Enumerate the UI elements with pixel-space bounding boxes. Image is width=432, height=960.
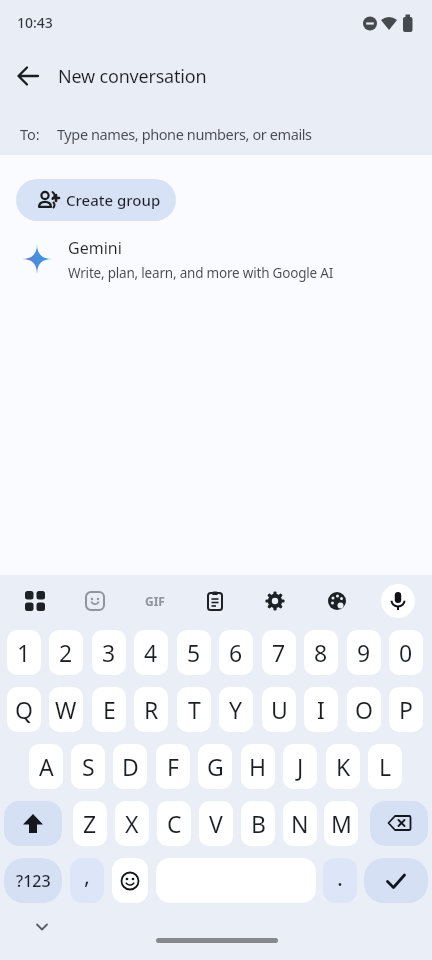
button[interactable]: GIF [137,583,173,619]
button[interactable] [257,583,293,619]
button[interactable] [17,583,53,619]
staticText: 9 [357,637,371,668]
button[interactable]: K [326,744,360,789]
button[interactable]: F [156,744,190,789]
staticText: 6 [229,637,243,668]
staticText: ?123 [16,870,51,892]
staticText: T [188,694,201,725]
button[interactable]: G [198,744,232,789]
button[interactable]: M [324,801,358,846]
button[interactable]: Q [7,687,41,732]
button[interactable]: 6 [219,630,253,675]
button[interactable]: 0 [389,630,423,675]
button[interactable] [4,801,62,846]
staticText: E [103,694,116,725]
staticText: GIF [145,593,165,609]
button[interactable]: , [70,858,104,903]
button[interactable]: . [323,858,357,903]
button[interactable]: 1 [7,630,41,675]
staticText: D [122,751,139,782]
staticText: M [331,808,352,839]
staticText: 0 [399,637,413,668]
button[interactable] [156,858,316,903]
button[interactable]: Z [73,801,107,846]
staticText: To: [20,124,40,144]
staticText: W [55,694,77,725]
button[interactable]: V [199,801,233,846]
staticText: Z [83,808,97,839]
button[interactable] [10,59,46,95]
staticText: G [207,751,224,782]
button[interactable] [319,583,355,619]
staticText: 8 [314,637,328,668]
staticText: Gemini [68,237,122,259]
staticText: R [144,694,159,725]
button[interactable]: E [92,687,126,732]
button[interactable]: 9 [347,630,381,675]
staticText: H [249,751,267,782]
button[interactable]: T [177,687,211,732]
staticText: N [291,808,309,839]
button[interactable] [77,583,113,619]
staticText: Create group [66,190,161,210]
button[interactable]: I [304,687,338,732]
button[interactable]: Gemini [0,228,432,292]
button[interactable]: ?123 [4,858,62,903]
staticText: 3 [102,637,116,668]
staticText: Type names, phone numbers, or emails [57,124,312,144]
staticText: I [317,694,325,725]
staticText: O [355,694,373,725]
button[interactable] [26,912,58,944]
staticText: 4 [144,637,158,668]
staticText: J [297,751,304,782]
staticText: Y [229,694,243,725]
button[interactable]: 8 [304,630,338,675]
button[interactable]: W [49,687,83,732]
button[interactable] [364,858,428,903]
button[interactable]: Y [219,687,253,732]
button[interactable]: 7 [262,630,296,675]
button[interactable]: C [157,801,191,846]
staticText: 1 [17,637,31,668]
staticText: U [271,694,288,725]
button[interactable] [381,584,415,618]
button[interactable]: 2 [49,630,83,675]
staticText: L [379,751,392,782]
staticText: X [125,808,139,839]
button[interactable]: 5 [177,630,211,675]
button[interactable]: N [283,801,317,846]
staticText: P [399,694,413,725]
button[interactable] [112,858,148,903]
staticText: S [82,751,95,782]
button[interactable]: P [389,687,423,732]
staticText: Write, plan, learn, and more with Google… [68,264,334,282]
button[interactable]: H [241,744,275,789]
button[interactable]: 3 [92,630,126,675]
button[interactable]: R [134,687,168,732]
staticText: V [209,808,223,839]
staticText: A [39,751,54,782]
button[interactable]: O [347,687,381,732]
button[interactable]: X [115,801,149,846]
button[interactable]: Create group [16,179,176,221]
button[interactable]: B [241,801,275,846]
staticText: 7 [272,637,286,668]
button[interactable]: L [368,744,402,789]
staticText: C [167,808,182,839]
button[interactable]: J [283,744,317,789]
staticText: B [251,808,266,839]
staticText: New conversation [58,64,207,89]
button[interactable]: D [113,744,147,789]
staticText: Q [15,694,33,725]
staticText: K [336,751,351,782]
staticText: 2 [59,637,73,668]
button[interactable]: S [71,744,105,789]
button[interactable] [197,583,233,619]
staticText: 10:43 [17,13,53,32]
button[interactable]: U [262,687,296,732]
staticText: F [167,751,179,782]
button[interactable]: 4 [134,630,168,675]
button[interactable] [370,801,428,846]
staticText: . [337,862,343,892]
button[interactable]: A [29,744,63,789]
